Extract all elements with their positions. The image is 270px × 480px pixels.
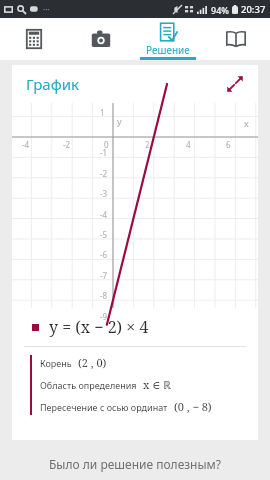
staticText: -1 xyxy=(100,147,108,158)
staticText: (0 , − 8) xyxy=(174,399,212,414)
staticText: -5 xyxy=(100,229,108,240)
staticText: 1 xyxy=(100,107,105,118)
button[interactable]: Решение xyxy=(134,18,202,60)
button[interactable]: Expand graph xyxy=(222,71,248,97)
staticText: ··· xyxy=(43,4,50,15)
button[interactable]: Camera xyxy=(67,18,134,60)
staticText: -3 xyxy=(100,188,108,199)
staticText: Область определения xyxy=(40,379,137,391)
staticText: Решение xyxy=(146,43,190,57)
staticText: -4 xyxy=(100,209,108,220)
staticText: 2 xyxy=(145,139,150,150)
staticText: y = (x − 2) × 4 xyxy=(49,316,149,338)
staticText: (2 , 0) xyxy=(78,355,107,370)
staticText: -4 xyxy=(22,139,30,150)
button[interactable]: Book xyxy=(202,18,270,60)
staticText: Пересечение с осью ординат xyxy=(40,401,168,413)
staticText: x xyxy=(244,117,249,129)
staticText: 0 xyxy=(104,139,109,150)
staticText: 94% xyxy=(211,4,229,16)
staticText: 4 xyxy=(186,139,191,150)
staticText: Было ли решение полезным? xyxy=(0,456,270,472)
staticText: -8 xyxy=(100,290,108,301)
staticText: y xyxy=(117,115,122,127)
staticText: -7 xyxy=(100,270,108,281)
button[interactable]: Calculator xyxy=(0,18,67,60)
staticText: -2 xyxy=(100,168,108,179)
staticText: График xyxy=(26,74,79,94)
staticText: -6 xyxy=(100,249,108,260)
staticText: x ∈ ℝ xyxy=(143,377,172,392)
staticText: 20:37 xyxy=(241,3,266,16)
staticText: Корень xyxy=(40,357,72,369)
staticText: -2 xyxy=(63,139,71,150)
staticText: -9 xyxy=(100,311,108,322)
staticText: 6 xyxy=(226,139,231,150)
